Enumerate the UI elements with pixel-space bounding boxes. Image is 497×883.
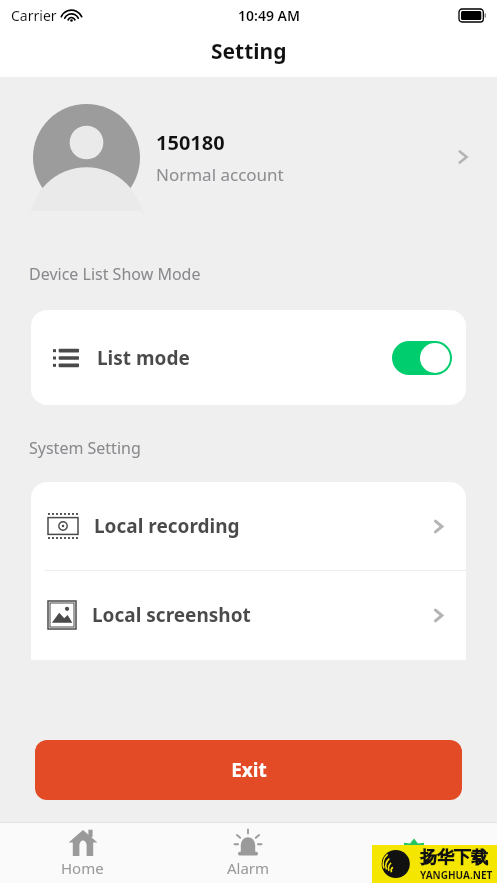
button[interactable]: Home [0, 822, 165, 883]
staticText: YANGHUA.NET [420, 868, 493, 882]
button[interactable]: Alarm [165, 822, 331, 883]
button[interactable]: Settings [331, 822, 497, 883]
staticText: Local screenshot [92, 602, 251, 628]
button[interactable]: Local recording [31, 482, 466, 570]
button[interactable]: Local screenshot [31, 571, 466, 659]
staticText: Setting [211, 37, 287, 66]
staticText: Home [61, 858, 104, 878]
button[interactable]: List mode [31, 310, 466, 405]
staticText: Normal account [156, 163, 284, 186]
staticText: System Setting [29, 437, 141, 459]
staticText: List mode [97, 345, 190, 371]
staticText: Local recording [94, 513, 240, 539]
staticText: Exit [231, 757, 267, 783]
button[interactable]: List mode toggle [392, 341, 452, 375]
staticText: Device List Show Mode [29, 263, 201, 285]
staticText: 150180 [156, 129, 225, 156]
staticText: 扬华下载 [420, 847, 488, 868]
button[interactable]: 150180 [0, 103, 497, 211]
staticText: Alarm [227, 858, 270, 878]
staticText: 10:49 AM [238, 6, 300, 25]
button[interactable]: Exit [35, 740, 462, 800]
staticText: Carrier [11, 6, 57, 25]
